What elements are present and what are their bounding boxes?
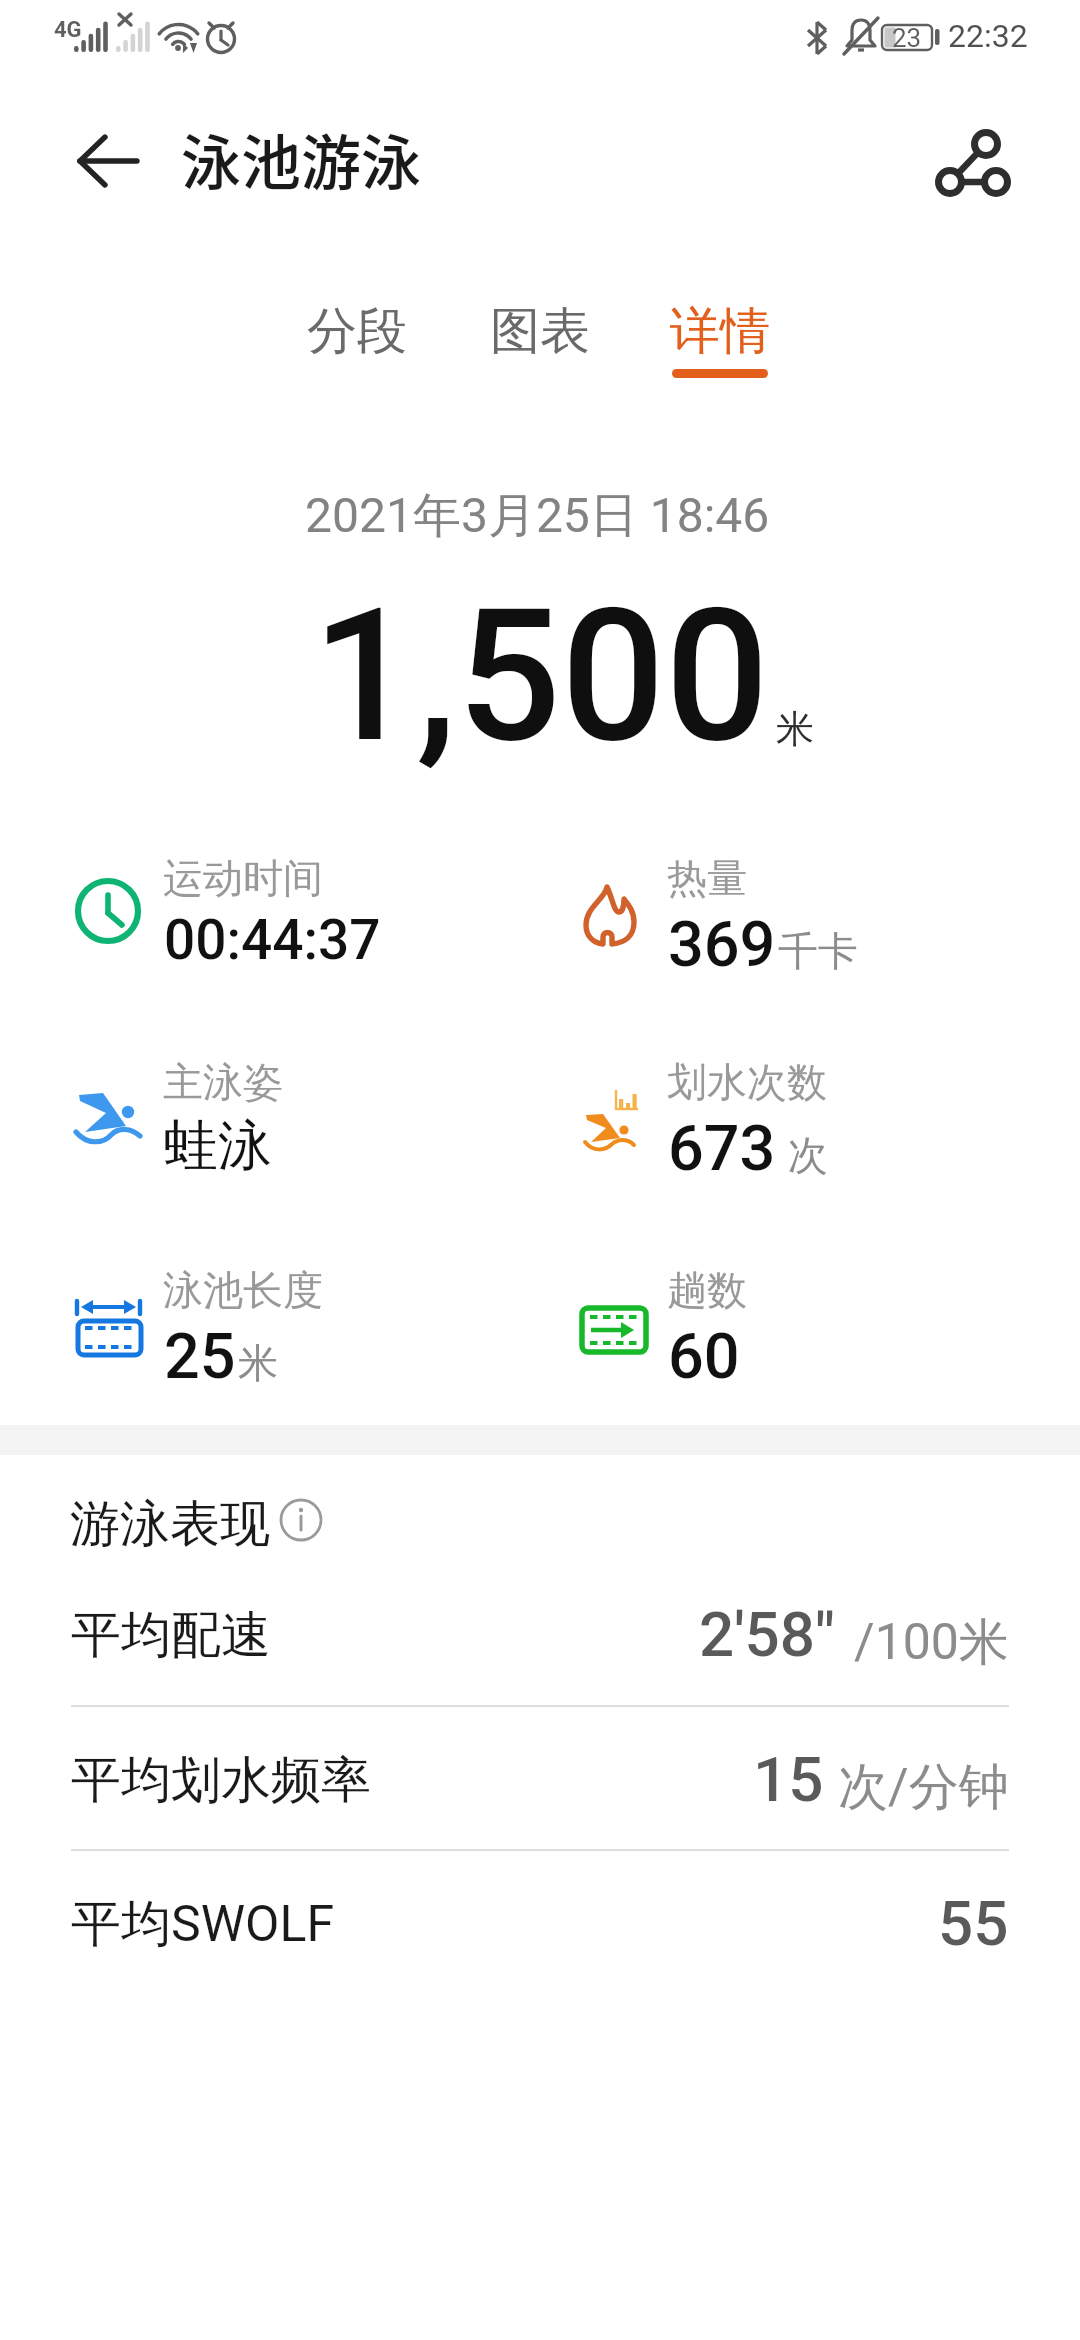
staticText: 运动时间 bbox=[163, 853, 323, 903]
staticText: /100米 bbox=[854, 1611, 1009, 1674]
staticText: 趟数 bbox=[667, 1265, 747, 1315]
staticText: 泳池长度 bbox=[163, 1265, 323, 1315]
button[interactable]: 平均SWOLF bbox=[0, 1851, 1080, 1995]
staticText: 热量 bbox=[667, 853, 747, 903]
button[interactable]: Back bbox=[62, 115, 154, 207]
staticText: 米 bbox=[776, 705, 814, 753]
staticText: 划水次数 bbox=[667, 1057, 827, 1107]
staticText: 次 bbox=[788, 1130, 828, 1180]
staticText: 23 bbox=[892, 23, 922, 53]
staticText: 次/分钟 bbox=[838, 1756, 1009, 1819]
staticText: 详情 bbox=[670, 300, 770, 363]
staticText: 蛙泳 bbox=[164, 1112, 272, 1180]
staticText: 游泳表现 bbox=[70, 1493, 270, 1556]
staticText: 米 bbox=[238, 1338, 278, 1388]
staticText: 分段 bbox=[307, 300, 407, 363]
staticText: 673 bbox=[668, 1112, 776, 1186]
button[interactable]: 平均划水频率 bbox=[0, 1707, 1080, 1851]
staticText: 55 bbox=[938, 1887, 1009, 1960]
staticText: 2021年3月25日 18:46 bbox=[305, 486, 770, 546]
staticText: 00:44:37 bbox=[164, 908, 381, 972]
staticText: 平均配速 bbox=[71, 1604, 271, 1667]
staticText: 平均划水频率 bbox=[71, 1749, 371, 1812]
button[interactable]: Info bbox=[280, 1499, 322, 1541]
button[interactable]: 详情 bbox=[640, 300, 800, 396]
button[interactable]: 图表 bbox=[460, 300, 620, 396]
staticText: 千卡 bbox=[778, 926, 858, 976]
staticText: 60 bbox=[668, 1320, 740, 1394]
button[interactable]: Share bbox=[922, 112, 1018, 208]
staticText: 369 bbox=[668, 908, 776, 982]
button[interactable]: 平均配速 bbox=[0, 1562, 1080, 1706]
staticText: 22:32 bbox=[948, 17, 1028, 55]
staticText: 图表 bbox=[490, 300, 590, 363]
staticText: 主泳姿 bbox=[163, 1057, 283, 1107]
staticText: 1,500 bbox=[312, 569, 769, 783]
staticText: 25 bbox=[164, 1320, 236, 1394]
staticText: 泳池游泳 bbox=[181, 115, 421, 202]
staticText: 平均SWOLF bbox=[71, 1893, 335, 1956]
staticText: 4G bbox=[54, 17, 82, 43]
staticText: 2'58" bbox=[699, 1598, 835, 1671]
staticText: 15 bbox=[753, 1743, 824, 1816]
button[interactable]: 分段 bbox=[277, 300, 437, 396]
